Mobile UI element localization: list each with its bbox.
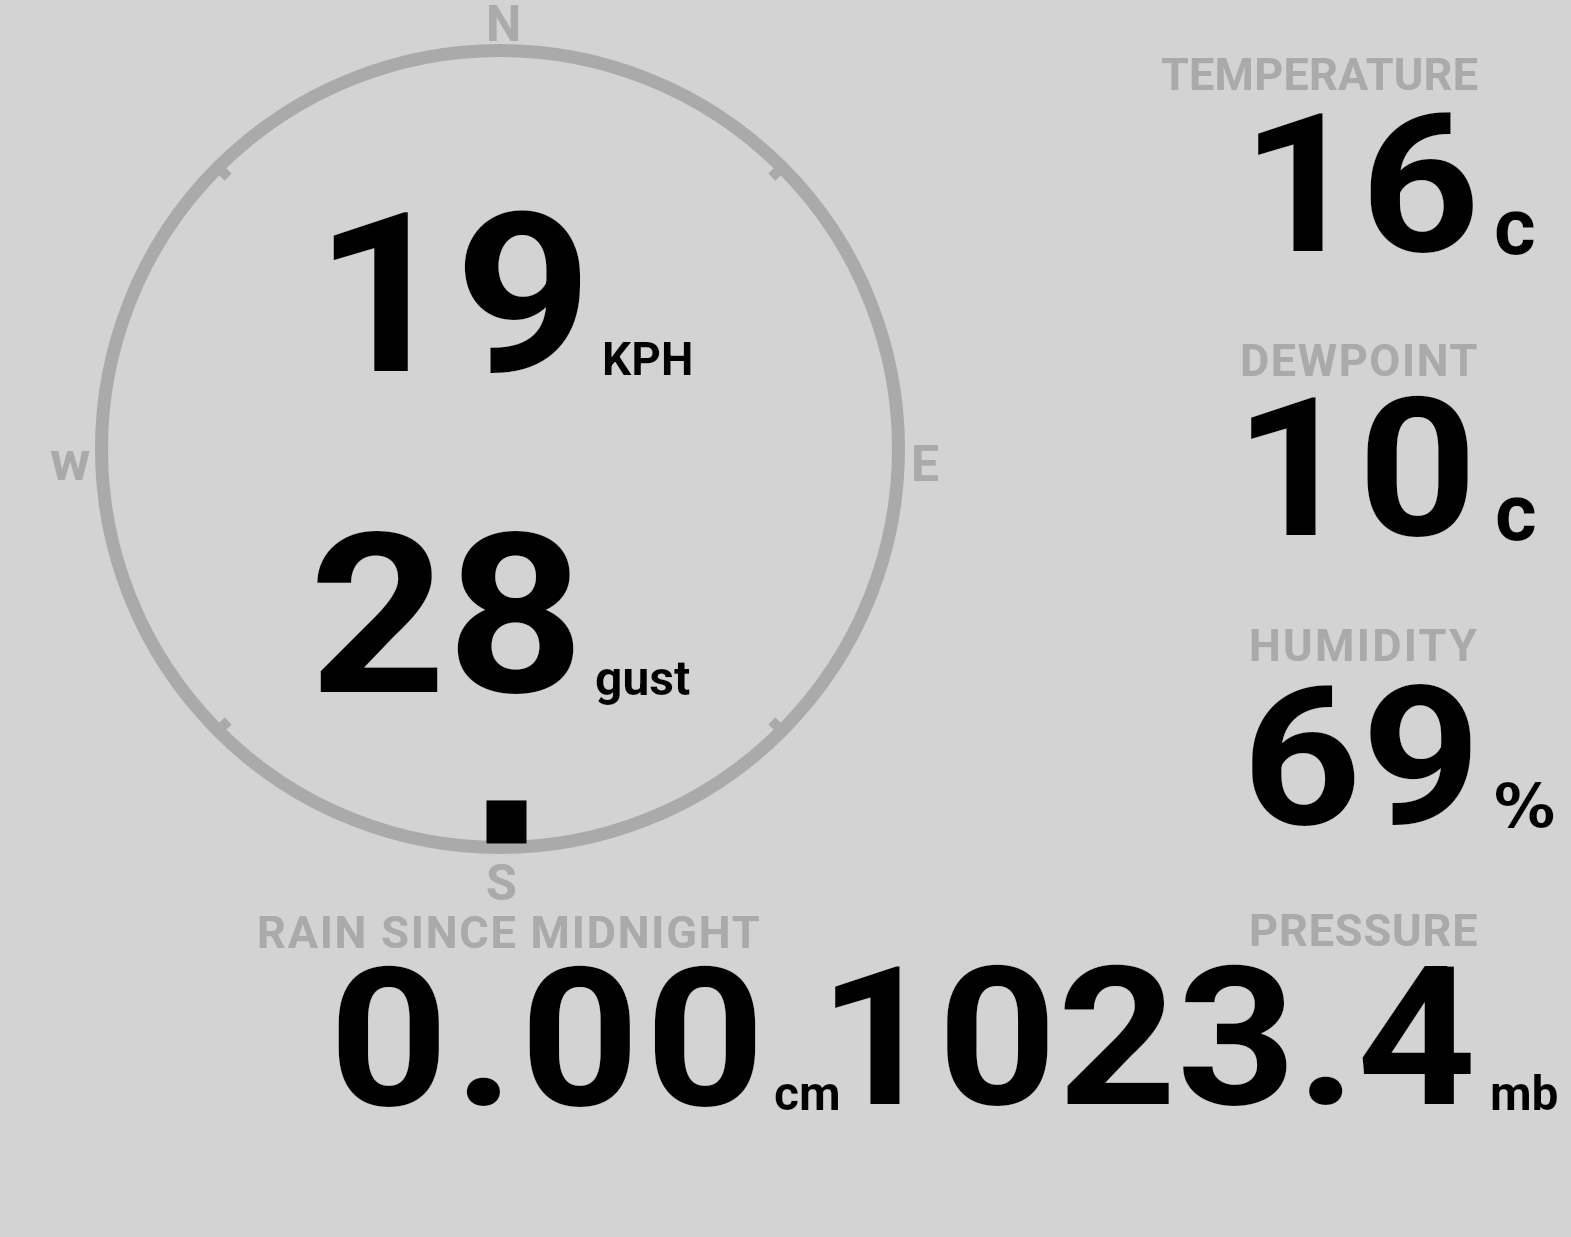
staticText: RAIN SINCE MIDNIGHT — [257, 906, 762, 959]
button[interactable]: Wind direction compass, south — [88, 37, 912, 861]
staticText: N — [486, 0, 522, 54]
button[interactable]: Humidity 69 percent — [1140, 615, 1565, 835]
staticText: 10 — [1234, 356, 1482, 582]
staticText: DEWPOINT — [1240, 334, 1479, 387]
staticText: 69 — [1242, 645, 1482, 871]
staticText: 19 — [314, 165, 596, 425]
staticText: PRESSURE — [1249, 904, 1479, 957]
staticText: HUMIDITY — [1249, 619, 1480, 672]
button[interactable]: Wind speed 19 KPH — [300, 190, 700, 390]
staticText: S — [486, 854, 517, 913]
staticText: gust — [595, 650, 691, 706]
staticText: 28 — [309, 486, 584, 746]
staticText: KPH — [602, 332, 694, 386]
staticText: c — [1495, 466, 1537, 560]
staticText: w — [50, 429, 91, 493]
staticText: c — [1494, 180, 1536, 274]
staticText: cm — [774, 1065, 841, 1121]
staticText: 16 — [1241, 72, 1481, 298]
button[interactable]: Rain since midnight 0.00 cm — [250, 900, 850, 1120]
button[interactable]: Temperature 16 C — [1140, 45, 1565, 265]
button[interactable]: Wind gust 28 — [300, 510, 700, 710]
staticText: % — [1494, 770, 1556, 841]
staticText: 0.00 — [329, 926, 771, 1152]
button[interactable]: Dew point 10 C — [1140, 330, 1565, 550]
staticText: E — [911, 435, 940, 494]
staticText: 1023.4 — [818, 925, 1477, 1151]
button[interactable]: Pressure 1023.4 mb — [850, 900, 1565, 1120]
staticText: mb — [1490, 1065, 1559, 1121]
staticText: TEMPERATURE — [1161, 48, 1479, 101]
